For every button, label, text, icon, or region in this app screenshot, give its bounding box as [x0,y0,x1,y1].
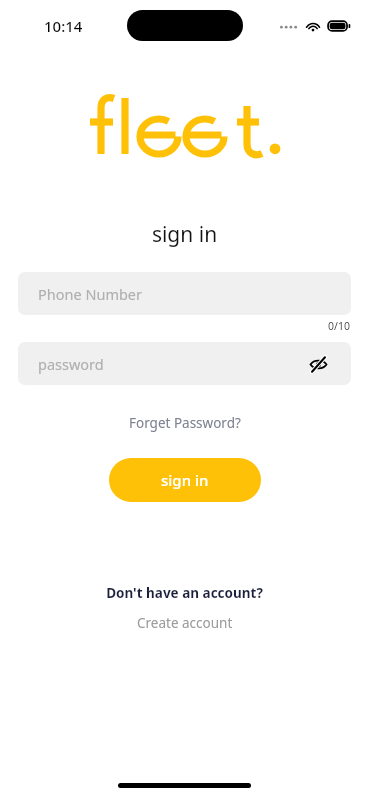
button[interactable]: Show password [305,351,331,377]
staticText: 10:14 [44,16,83,36]
staticText: 0/10 [0,319,350,333]
staticText: Create account [137,614,233,632]
staticText: Phone Number [38,284,143,304]
staticText: Don't have an account? [0,584,369,602]
button[interactable]: Phone Number [18,272,351,315]
staticText: sign in [161,470,209,490]
button[interactable]: Forget Password? [119,410,251,436]
staticText: Forget Password? [129,414,241,432]
button[interactable]: Create account [127,611,243,635]
staticText: sign in [0,220,369,249]
button[interactable]: sign in [109,458,261,502]
staticText: password [38,354,104,374]
button[interactable]: password [18,342,351,385]
other: fleet [81,94,289,170]
